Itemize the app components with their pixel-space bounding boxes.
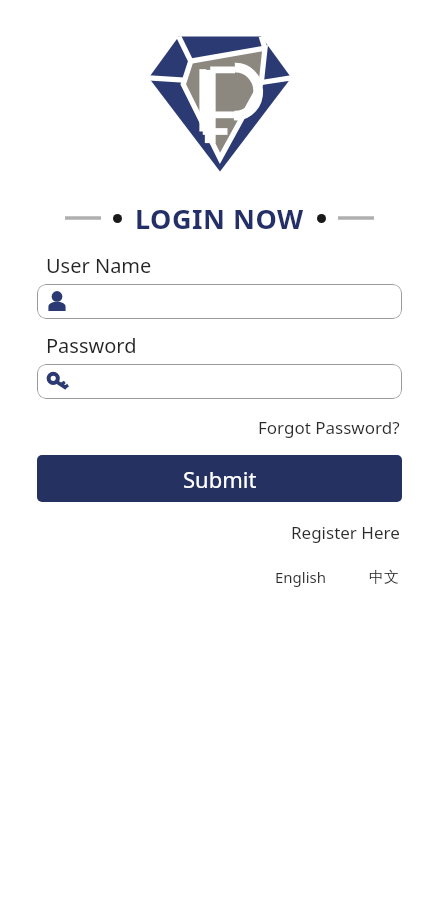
staticText: User Name [46,252,152,279]
button[interactable]: 中文 [366,565,402,590]
staticText: English [275,567,327,587]
staticText: 中文 [369,568,399,587]
button[interactable]: Forgot Password? [256,413,402,442]
button[interactable]: Register Here [289,518,402,547]
staticText: Forgot Password? [258,416,400,439]
button[interactable]: Password field [37,364,402,399]
button[interactable]: English [272,564,330,590]
staticText: Submit [183,464,257,494]
staticText: LOGIN NOW [135,200,304,237]
staticText: Register Here [291,521,400,544]
button[interactable]: User name field [37,284,402,319]
staticText: Password [46,332,137,359]
button[interactable]: Submit [37,455,402,502]
